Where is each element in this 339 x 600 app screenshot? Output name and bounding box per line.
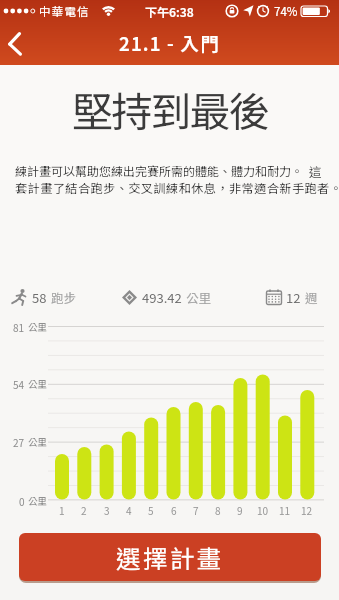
staticText: 12 (286, 288, 301, 306)
staticText: 12 (301, 503, 313, 516)
staticText: 81 (13, 320, 25, 334)
staticText: 跑步 (51, 288, 77, 306)
staticText: 公里 (28, 377, 48, 391)
staticText: 54 (13, 377, 25, 391)
staticText: 中華電信 (39, 3, 90, 20)
staticText: 公里 (186, 288, 212, 306)
staticText: 27 (13, 435, 25, 449)
button[interactable] (0, 22, 44, 65)
staticText: 下午6:38 (145, 3, 194, 20)
staticText: 3 (104, 503, 110, 516)
staticText: 74% (274, 3, 298, 20)
staticText: 堅持到最後 (72, 79, 268, 131)
staticText: 公里 (28, 435, 48, 449)
staticText: 4 (126, 503, 132, 516)
staticText: 10 (257, 503, 269, 516)
staticText: 493.42 (142, 288, 182, 306)
staticText: 0 (19, 494, 25, 508)
staticText: 公里 (28, 494, 48, 508)
staticText: 週 (305, 288, 318, 306)
staticText: 21.1 - 入門 (119, 30, 220, 57)
staticText: 9 (237, 503, 243, 516)
staticText: 6 (171, 503, 177, 516)
staticText: 5 (148, 503, 154, 516)
staticText: 58 (32, 288, 47, 306)
staticText: 套計畫了結合跑步、交叉訓練和休息，非常適合新手跑者。 (15, 179, 339, 195)
staticText: 這 (309, 162, 322, 178)
staticText: 11 (279, 503, 291, 516)
staticText: 練計畫可以幫助您練出完賽所需的體能、體力和耐力。 (15, 162, 304, 178)
staticText: 公里 (28, 320, 48, 334)
staticText: 選擇計畫 (116, 540, 224, 575)
staticText: 8 (215, 503, 221, 516)
button[interactable]: 選擇計畫 (19, 533, 321, 581)
staticText: 2 (81, 503, 87, 516)
staticText: 1 (59, 503, 65, 516)
staticText: 7 (193, 503, 199, 516)
